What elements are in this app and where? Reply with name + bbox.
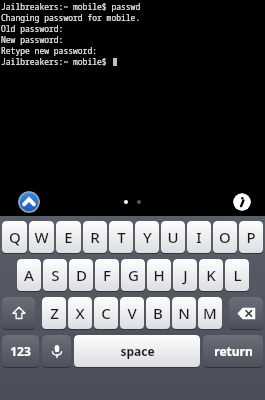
staticText: X xyxy=(75,303,85,323)
staticText: J xyxy=(183,265,188,285)
staticText: R xyxy=(90,227,100,247)
button[interactable]: P xyxy=(239,221,263,253)
button[interactable]: Z xyxy=(42,297,66,329)
button[interactable]: Shift xyxy=(2,297,35,329)
staticText: H xyxy=(153,265,165,285)
staticText: Z xyxy=(50,303,59,323)
button[interactable]: return xyxy=(203,335,263,367)
button[interactable]: I xyxy=(187,221,211,253)
button[interactable]: H xyxy=(147,259,171,291)
staticText: D xyxy=(76,265,87,285)
button[interactable]: L xyxy=(225,259,249,291)
button[interactable]: Backspace xyxy=(229,297,263,329)
button[interactable]: 123 xyxy=(2,335,39,367)
staticText: N xyxy=(178,303,190,323)
staticText: Y xyxy=(143,227,152,247)
button[interactable]: space xyxy=(74,335,200,367)
staticText: W xyxy=(34,227,49,247)
staticText: K xyxy=(206,265,216,285)
button[interactable]: C xyxy=(94,297,118,329)
staticText: 123 xyxy=(10,343,31,359)
button[interactable]: Dictate xyxy=(42,335,71,367)
staticText: P xyxy=(246,227,256,247)
button[interactable]: F xyxy=(95,259,119,291)
staticText: E xyxy=(64,227,73,247)
staticText: Changing password for mobile. xyxy=(1,12,141,23)
button[interactable]: M xyxy=(198,297,222,329)
button[interactable]: A xyxy=(17,259,41,291)
button[interactable]: R xyxy=(83,221,107,253)
button[interactable]: B xyxy=(146,297,170,329)
button[interactable]: S xyxy=(43,259,67,291)
staticText: O xyxy=(219,227,231,247)
staticText: S xyxy=(51,265,60,285)
staticText: return xyxy=(214,343,253,359)
button[interactable]: Y xyxy=(135,221,159,253)
button[interactable]: N xyxy=(172,297,196,329)
button[interactable]: D xyxy=(69,259,93,291)
button[interactable]: T xyxy=(109,221,133,253)
button[interactable]: O xyxy=(213,221,237,253)
button[interactable]: X xyxy=(68,297,92,329)
button[interactable]: Q xyxy=(2,221,27,253)
staticText: Retype new password: xyxy=(1,45,97,56)
staticText: T xyxy=(117,227,126,247)
staticText: M xyxy=(203,303,217,323)
staticText: U xyxy=(167,227,179,247)
staticText: Old password: xyxy=(1,23,64,34)
staticText: A xyxy=(24,265,34,285)
staticText: Jailbreakers:~ mobile$ passwd xyxy=(1,1,141,12)
button[interactable]: K xyxy=(199,259,223,291)
staticText: B xyxy=(153,303,163,323)
button[interactable]: E xyxy=(56,221,81,253)
staticText: C xyxy=(101,303,111,323)
staticText: Q xyxy=(9,227,21,247)
button[interactable]: V xyxy=(120,297,144,329)
staticText: V xyxy=(127,303,137,323)
staticText: I xyxy=(196,227,202,247)
staticText: F xyxy=(103,265,111,285)
button[interactable]: G xyxy=(121,259,145,291)
button[interactable]: U xyxy=(161,221,185,253)
staticText: L xyxy=(233,265,242,285)
staticText: space xyxy=(120,343,155,359)
button[interactable]: W xyxy=(29,221,54,253)
staticText: Jailbreakers:~ mobile$ xyxy=(1,56,112,67)
staticText: New password: xyxy=(1,34,64,45)
staticText: G xyxy=(128,265,139,285)
button[interactable]: Info xyxy=(233,193,251,211)
button[interactable]: Show previous xyxy=(18,191,40,213)
button[interactable]: J xyxy=(173,259,197,291)
